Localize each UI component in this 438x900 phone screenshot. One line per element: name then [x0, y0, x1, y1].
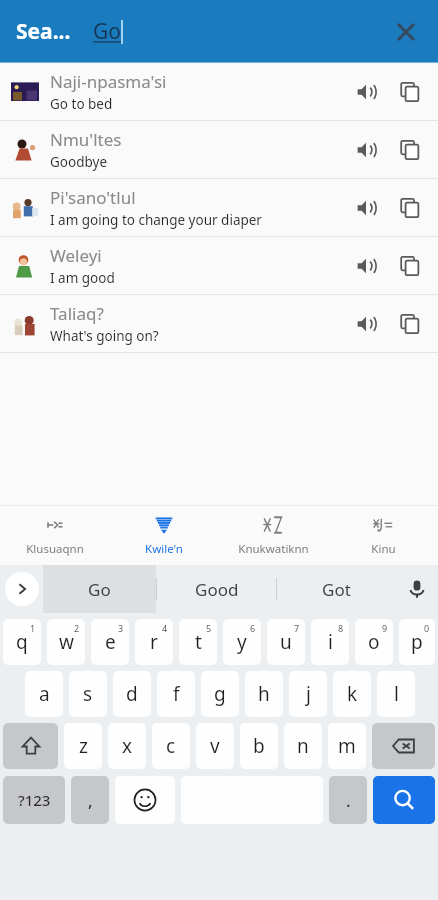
- button[interactable]: x: [108, 723, 146, 769]
- button[interactable]: e: [91, 619, 129, 665]
- button[interactable]: Nmu'ltes: [0, 121, 438, 178]
- button[interactable]: Play audio: [344, 302, 388, 346]
- button[interactable]: Copy: [388, 128, 432, 172]
- button[interactable]: u: [267, 619, 305, 665]
- button[interactable]: Knukwatiknn: [218, 505, 328, 565]
- button[interactable]: Backspace: [372, 723, 435, 769]
- staticText: Sea...: [16, 17, 71, 46]
- staticText: Weleyi: [50, 244, 102, 267]
- button[interactable]: y: [223, 619, 261, 665]
- staticText: ,: [88, 789, 93, 812]
- button[interactable]: More suggestions: [0, 565, 43, 613]
- button[interactable]: Kinu: [328, 505, 438, 565]
- staticText: Go to bed: [50, 95, 113, 113]
- button[interactable]: q: [3, 619, 41, 665]
- button[interactable]: ?123: [3, 776, 65, 824]
- button[interactable]: d: [113, 671, 151, 717]
- staticText: v: [210, 733, 220, 759]
- staticText: 7: [294, 622, 300, 634]
- staticText: ?123: [18, 790, 51, 810]
- staticText: Naji-npasma'si: [50, 70, 167, 93]
- button[interactable]: Got: [277, 565, 395, 613]
- staticText: z: [79, 733, 88, 759]
- button[interactable]: Shift: [3, 723, 58, 769]
- button[interactable]: t: [179, 619, 217, 665]
- button[interactable]: g: [201, 671, 239, 717]
- button[interactable]: Copy: [388, 244, 432, 288]
- staticText: u: [280, 629, 292, 655]
- staticText: c: [166, 733, 176, 759]
- staticText: 9: [382, 622, 388, 634]
- button[interactable]: Kwile'n: [109, 505, 218, 565]
- button[interactable]: v: [196, 723, 234, 769]
- button[interactable]: Weleyi: [0, 237, 438, 294]
- button[interactable]: Play audio: [344, 70, 388, 114]
- button[interactable]: Play audio: [344, 244, 388, 288]
- button[interactable]: .: [329, 776, 367, 824]
- staticText: Good: [195, 578, 239, 601]
- staticText: w: [59, 629, 74, 655]
- staticText: l: [394, 681, 399, 707]
- button[interactable]: Taliaq?: [0, 295, 438, 352]
- button[interactable]: h: [245, 671, 283, 717]
- staticText: e: [105, 629, 116, 655]
- staticText: Klusuaqnn: [26, 541, 84, 557]
- button[interactable]: i: [311, 619, 349, 665]
- staticText: 8: [338, 622, 344, 634]
- button[interactable]: Play audio: [344, 186, 388, 230]
- button[interactable]: Play audio: [344, 128, 388, 172]
- staticText: t: [195, 629, 202, 655]
- button[interactable]: c: [152, 723, 190, 769]
- staticText: Go: [93, 17, 121, 46]
- staticText: i: [328, 629, 333, 655]
- button[interactable]: Go: [43, 565, 156, 613]
- button[interactable]: l: [377, 671, 415, 717]
- staticText: q: [16, 629, 28, 655]
- staticText: a: [39, 681, 50, 707]
- button[interactable]: Naji-npasma'si: [0, 63, 438, 120]
- staticText: k: [347, 681, 358, 707]
- staticText: h: [258, 681, 270, 707]
- staticText: 5: [206, 622, 212, 634]
- staticText: o: [368, 629, 380, 655]
- button[interactable]: s: [69, 671, 107, 717]
- staticText: m: [338, 733, 356, 759]
- button[interactable]: Search: [373, 776, 435, 824]
- staticText: r: [150, 629, 158, 655]
- button[interactable]: r: [135, 619, 173, 665]
- button[interactable]: Pi'sano'tlul: [0, 179, 438, 236]
- button[interactable]: f: [157, 671, 195, 717]
- button[interactable]: Copy: [388, 186, 432, 230]
- button[interactable]: Voice input: [395, 565, 438, 613]
- button[interactable]: ,: [71, 776, 109, 824]
- staticText: I am going to change your diaper: [50, 211, 262, 229]
- staticText: d: [126, 681, 138, 707]
- staticText: j: [306, 681, 311, 707]
- staticText: s: [83, 681, 93, 707]
- button[interactable]: Close search: [382, 8, 430, 56]
- button[interactable]: z: [64, 723, 102, 769]
- staticText: What's going on?: [50, 327, 159, 345]
- staticText: .: [346, 789, 351, 812]
- button[interactable]: w: [47, 619, 85, 665]
- button[interactable]: b: [240, 723, 278, 769]
- button[interactable]: p: [399, 619, 435, 665]
- button[interactable]: Emoji: [115, 776, 175, 824]
- button[interactable]: Good: [157, 565, 276, 613]
- button[interactable]: m: [328, 723, 366, 769]
- button[interactable]: Klusuaqnn: [0, 505, 109, 565]
- button[interactable]: Copy: [388, 70, 432, 114]
- button[interactable]: j: [289, 671, 327, 717]
- staticText: Go: [88, 578, 111, 601]
- button[interactable]: n: [284, 723, 322, 769]
- staticText: Goodbye: [50, 153, 107, 171]
- button[interactable]: Copy: [388, 302, 432, 346]
- staticText: 2: [74, 622, 80, 634]
- staticText: y: [237, 629, 247, 655]
- button[interactable]: k: [333, 671, 371, 717]
- button[interactable]: a: [25, 671, 63, 717]
- staticText: b: [253, 733, 265, 759]
- button[interactable]: o: [355, 619, 393, 665]
- staticText: p: [411, 629, 423, 655]
